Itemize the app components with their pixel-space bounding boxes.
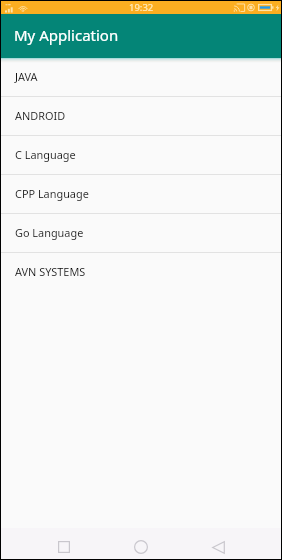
staticText: CPP Language <box>15 186 89 201</box>
staticText: Go Language <box>15 225 84 240</box>
button[interactable]: CPP Language <box>1 175 281 213</box>
button[interactable]: ANDROID <box>1 97 281 135</box>
button[interactable]: Go Language <box>1 214 281 252</box>
staticText: ANDROID <box>15 108 66 123</box>
button[interactable]: AVN SYSTEMS <box>1 253 281 291</box>
button[interactable]: C Language <box>1 136 281 174</box>
button[interactable]: JAVA <box>1 58 281 96</box>
button[interactable]: Home <box>117 535 165 559</box>
button[interactable]: Recent apps <box>40 535 88 559</box>
staticText: My Application <box>14 25 119 45</box>
staticText: C Language <box>15 147 76 162</box>
staticText: JAVA <box>15 69 38 84</box>
staticText: 19:32 <box>129 1 154 14</box>
button[interactable]: Back <box>194 535 242 559</box>
staticText: AVN SYSTEMS <box>15 264 86 279</box>
